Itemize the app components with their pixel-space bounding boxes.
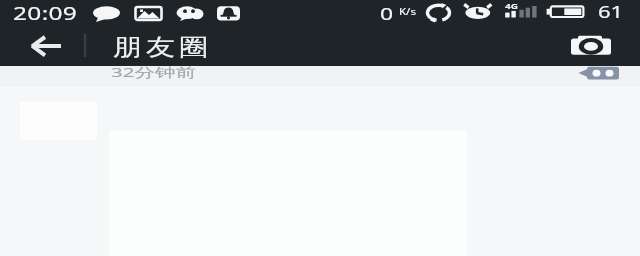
button[interactable] xyxy=(576,62,622,83)
staticText: 20:09 xyxy=(13,2,78,25)
button[interactable] xyxy=(560,28,622,66)
staticText: 4G xyxy=(505,3,518,11)
staticText: 0 xyxy=(380,3,394,24)
staticText: K/s xyxy=(399,6,416,18)
staticText: 朋友圈 xyxy=(111,33,210,62)
staticText: 32分钟前 xyxy=(111,63,196,81)
button[interactable] xyxy=(18,28,72,66)
staticText: 61 xyxy=(598,1,624,22)
